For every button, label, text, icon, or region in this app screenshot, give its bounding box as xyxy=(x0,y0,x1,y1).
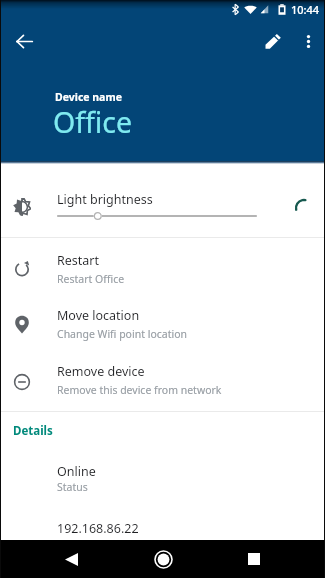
button[interactable]: Remove device xyxy=(0,352,325,408)
staticText: Move location xyxy=(57,307,140,324)
button[interactable]: Move location xyxy=(0,296,325,352)
staticText: Remove device xyxy=(57,363,145,380)
button[interactable]: Back xyxy=(53,541,89,577)
staticText: Office xyxy=(53,103,132,142)
staticText: Light brightness xyxy=(57,191,153,208)
button[interactable]: Recents xyxy=(236,541,272,577)
staticText: 192.168.86.22 xyxy=(57,520,139,537)
staticText: Change Wifi point location xyxy=(57,327,187,341)
button[interactable]: Home xyxy=(145,541,181,577)
button[interactable]: Back xyxy=(8,25,40,57)
staticText: Remove this device from network xyxy=(57,383,222,397)
staticText: Status xyxy=(57,480,88,494)
button[interactable] xyxy=(0,163,325,237)
button[interactable]: More options xyxy=(292,25,324,57)
button[interactable]: Edit xyxy=(257,25,289,57)
staticText: Restart Office xyxy=(57,272,125,286)
staticText: 10:44 xyxy=(291,2,320,16)
staticText: Details xyxy=(13,423,53,439)
staticText: Device name xyxy=(55,90,122,104)
staticText: Online xyxy=(57,463,96,480)
staticText: Restart xyxy=(57,252,100,269)
button[interactable]: Restart xyxy=(0,241,325,297)
